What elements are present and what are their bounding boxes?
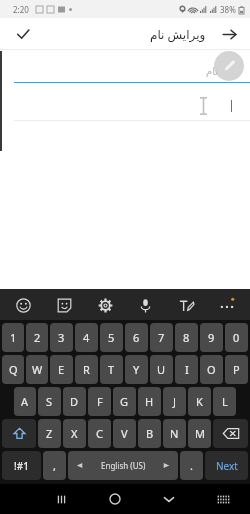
staticText: !#1 <box>14 459 29 473</box>
button[interactable]: ویرایش نام <box>150 26 206 42</box>
staticText: T <box>108 362 115 377</box>
button[interactable]: Z <box>38 419 61 448</box>
button[interactable]: J <box>163 387 186 416</box>
button[interactable]: Settings <box>94 294 116 316</box>
button[interactable]: Home <box>102 486 128 512</box>
button[interactable]: K <box>188 387 211 416</box>
button[interactable]: G <box>113 387 136 416</box>
button[interactable]: B <box>138 419 161 448</box>
staticText: Q <box>9 362 18 377</box>
staticText: K <box>196 394 203 409</box>
button[interactable]: A <box>14 387 36 416</box>
staticText: 3 <box>58 330 65 345</box>
staticText: Y <box>133 362 140 377</box>
staticText: M <box>195 426 205 441</box>
button[interactable]: Hide keyboard <box>156 486 182 512</box>
button[interactable]: C <box>88 419 111 448</box>
button[interactable]: H <box>138 387 161 416</box>
button[interactable]: Emoji <box>12 294 34 316</box>
staticText: A <box>21 394 29 409</box>
staticText: P <box>233 362 240 377</box>
button[interactable]: S <box>38 387 61 416</box>
staticText: 5 <box>108 330 115 345</box>
staticText: 4 <box>83 330 90 345</box>
button[interactable]: F <box>88 387 111 416</box>
staticText: G <box>120 394 129 409</box>
staticText: 7 <box>158 330 165 345</box>
button[interactable]: . <box>180 451 203 480</box>
button[interactable]: R <box>75 355 98 384</box>
staticText: , <box>53 458 56 473</box>
button[interactable]: 0 <box>225 323 248 352</box>
button[interactable]: D <box>63 387 86 416</box>
button[interactable]: 2 <box>26 323 48 352</box>
button[interactable]: Confirm <box>8 19 38 49</box>
staticText: S <box>46 394 53 409</box>
staticText: O <box>207 362 216 377</box>
button[interactable]: 1 <box>2 323 24 352</box>
staticText: V <box>121 426 128 441</box>
button[interactable]: 5 <box>100 323 123 352</box>
staticText: Next <box>216 459 238 473</box>
button[interactable]: Edit photo <box>214 51 244 81</box>
button[interactable]: Stickers <box>53 294 75 316</box>
button[interactable]: O <box>200 355 223 384</box>
staticText: H <box>145 394 154 409</box>
button[interactable]: Recents <box>48 486 74 512</box>
button[interactable]: 6 <box>125 323 148 352</box>
button[interactable]: More options <box>216 294 238 316</box>
staticText: . <box>190 458 193 473</box>
button[interactable]: X <box>63 419 86 448</box>
staticText: W <box>32 362 43 377</box>
button[interactable]: 9 <box>200 323 223 352</box>
staticText: 0 <box>233 330 240 345</box>
button[interactable]: M <box>188 419 211 448</box>
staticText: B <box>146 426 154 441</box>
staticText: 1 <box>10 330 17 345</box>
button[interactable]: Voice input <box>134 294 156 316</box>
staticText: D <box>70 394 79 409</box>
staticText: Z <box>46 426 53 441</box>
staticText: 2 <box>34 330 41 345</box>
button[interactable]: 8 <box>175 323 198 352</box>
staticText: 6 <box>133 330 140 345</box>
staticText: F <box>97 394 103 409</box>
staticText: U <box>157 362 166 377</box>
button[interactable]: Next <box>205 451 248 480</box>
button[interactable]: 7 <box>150 323 173 352</box>
staticText: 38% <box>220 4 236 15</box>
staticText: C <box>96 426 103 441</box>
button[interactable]: Q <box>2 355 24 384</box>
button[interactable]: P <box>225 355 248 384</box>
button[interactable]: Back <box>214 19 244 49</box>
staticText: R <box>83 362 90 377</box>
button[interactable]: 3 <box>50 323 73 352</box>
button[interactable]: W <box>26 355 48 384</box>
staticText: E <box>58 362 65 377</box>
staticText: English (US) <box>101 460 146 471</box>
staticText: N <box>170 426 179 441</box>
button[interactable]: !#1 <box>2 451 41 480</box>
button[interactable]: T <box>100 355 123 384</box>
staticText: J <box>173 394 177 409</box>
staticText: 2:20 <box>13 4 29 15</box>
button[interactable]: I <box>175 355 198 384</box>
button[interactable]: N <box>163 419 186 448</box>
button[interactable]: 4 <box>75 323 98 352</box>
button[interactable]: U <box>150 355 173 384</box>
button[interactable]: L <box>213 387 236 416</box>
button[interactable]: Backspace <box>213 419 248 448</box>
button[interactable]: E <box>50 355 73 384</box>
button[interactable]: Text editing <box>175 294 197 316</box>
staticText: 9 <box>208 330 215 345</box>
button[interactable]: Change keyboard <box>210 486 236 512</box>
button[interactable]: English (US) <box>68 451 178 480</box>
staticText: نام <box>0 66 218 78</box>
staticText: 8 <box>183 330 190 345</box>
button[interactable]: V <box>113 419 136 448</box>
button[interactable]: , <box>43 451 66 480</box>
staticText: X <box>71 426 78 441</box>
staticText: I <box>185 362 189 377</box>
button[interactable]: Y <box>125 355 148 384</box>
button[interactable]: Shift <box>2 419 36 448</box>
